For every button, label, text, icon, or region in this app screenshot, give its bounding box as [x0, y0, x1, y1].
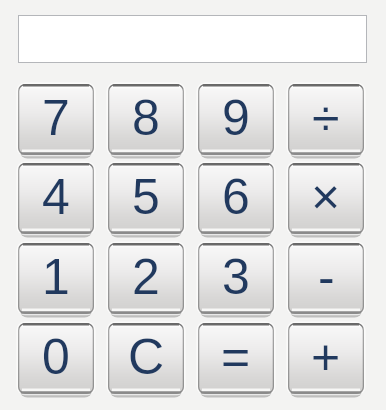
button[interactable]: ÷ [288, 84, 364, 159]
button[interactable]: 0 [18, 323, 94, 398]
button[interactable] [18, 15, 367, 63]
staticText: + [311, 329, 341, 385]
button[interactable]: 5 [108, 163, 184, 238]
staticText: × [311, 169, 341, 225]
staticText: 3 [222, 249, 250, 305]
button[interactable]: 6 [198, 163, 274, 238]
staticText: 4 [42, 169, 70, 225]
staticText: 9 [222, 90, 250, 146]
staticText: ÷ [312, 90, 340, 146]
staticText: 5 [132, 169, 160, 225]
staticText: - [318, 249, 335, 305]
button[interactable]: 8 [108, 84, 184, 159]
button[interactable]: × [288, 163, 364, 238]
button[interactable]: 1 [18, 243, 94, 318]
staticText: = [221, 329, 251, 385]
staticText: C [128, 329, 165, 385]
staticText: 0 [42, 329, 70, 385]
button[interactable]: + [288, 323, 364, 398]
button[interactable]: = [198, 323, 274, 398]
button[interactable]: C [108, 323, 184, 398]
button[interactable]: 2 [108, 243, 184, 318]
staticText: 1 [42, 249, 70, 305]
staticText: 6 [222, 169, 250, 225]
staticText: 7 [42, 90, 70, 146]
button[interactable]: 9 [198, 84, 274, 159]
button[interactable]: 4 [18, 163, 94, 238]
button[interactable]: 3 [198, 243, 274, 318]
staticText: 8 [132, 90, 160, 146]
button[interactable]: 7 [18, 84, 94, 159]
staticText: 2 [132, 249, 160, 305]
button[interactable]: - [288, 243, 364, 318]
